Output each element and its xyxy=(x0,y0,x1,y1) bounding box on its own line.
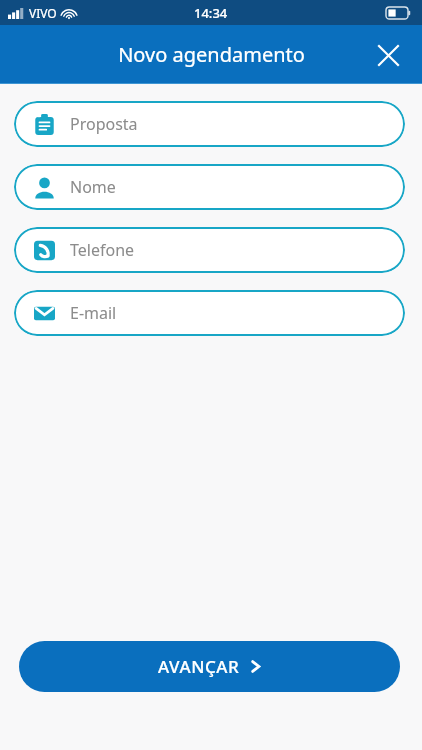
button[interactable]: AVANÇAR xyxy=(19,641,400,692)
staticText: Novo agendamento xyxy=(118,41,305,68)
staticText: E-mail xyxy=(70,302,117,324)
button[interactable]: Fechar xyxy=(368,35,408,75)
button[interactable]: Proposta xyxy=(14,101,405,147)
staticText: AVANÇAR xyxy=(158,655,240,678)
button[interactable]: Nome xyxy=(14,164,405,210)
button[interactable]: E-mail xyxy=(14,290,405,336)
staticText: 14:34 xyxy=(194,4,228,22)
staticText: Telefone xyxy=(70,239,135,261)
button[interactable]: Telefone xyxy=(14,227,405,273)
staticText: VIVO xyxy=(29,5,57,21)
staticText: Proposta xyxy=(70,113,138,135)
staticText: Nome xyxy=(70,176,116,198)
